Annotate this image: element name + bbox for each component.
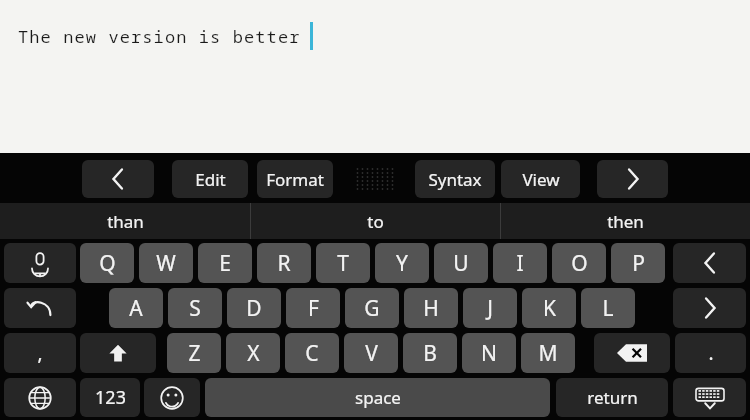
staticText: R xyxy=(277,249,291,278)
staticText: N xyxy=(481,339,497,368)
button[interactable]: Backspace xyxy=(594,333,670,373)
button[interactable]: S xyxy=(168,288,222,328)
button[interactable]: Hide keyboard xyxy=(673,378,746,417)
staticText: A xyxy=(129,294,143,323)
staticText: H xyxy=(423,294,439,323)
staticText: K xyxy=(543,294,556,323)
staticText: to xyxy=(367,210,384,233)
button[interactable]: Z xyxy=(167,333,221,373)
button[interactable]: . xyxy=(675,333,746,373)
staticText: T xyxy=(337,249,349,278)
button[interactable]: L xyxy=(581,288,635,328)
button[interactable]: W xyxy=(139,243,193,283)
staticText: L xyxy=(602,294,614,323)
button[interactable]: Emoji xyxy=(144,378,200,417)
button[interactable]: X xyxy=(226,333,280,373)
button[interactable]: D xyxy=(227,288,281,328)
button[interactable]: P xyxy=(611,243,665,283)
button[interactable]: Move cursor left xyxy=(673,243,746,283)
staticText: P xyxy=(632,249,645,278)
staticText: Syntax xyxy=(428,168,482,191)
button[interactable]: Q xyxy=(80,243,134,283)
button[interactable]: Next xyxy=(597,160,668,198)
button[interactable]: M xyxy=(521,333,575,373)
button[interactable]: Edit xyxy=(172,160,248,198)
button[interactable]: return xyxy=(556,378,668,417)
staticText: Q xyxy=(99,249,116,278)
button[interactable]: C xyxy=(285,333,339,373)
button[interactable]: E xyxy=(198,243,252,283)
staticText: S xyxy=(189,294,201,323)
staticText: than xyxy=(107,210,144,233)
button[interactable]: K xyxy=(522,288,576,328)
button[interactable]: then xyxy=(501,203,750,239)
staticText: E xyxy=(219,249,231,278)
button[interactable]: Syntax xyxy=(415,160,495,198)
button[interactable]: Undo xyxy=(4,288,76,328)
staticText: J xyxy=(487,294,493,323)
button[interactable]: than xyxy=(0,203,250,239)
staticText: Format xyxy=(266,168,324,191)
button[interactable]: J xyxy=(463,288,517,328)
staticText: , xyxy=(37,340,43,366)
button[interactable]: View xyxy=(501,160,580,198)
button[interactable]: Move cursor right xyxy=(673,288,746,328)
staticText: . xyxy=(708,340,714,366)
button[interactable]: R xyxy=(257,243,311,283)
staticText: return xyxy=(587,386,638,409)
staticText: U xyxy=(453,249,469,278)
button[interactable]: A xyxy=(109,288,163,328)
button[interactable]: space xyxy=(205,378,550,417)
button[interactable]: , xyxy=(4,333,76,373)
button[interactable]: V xyxy=(344,333,398,373)
staticText: The new version is better xyxy=(18,25,301,48)
staticText: Y xyxy=(396,249,408,278)
staticText: Edit xyxy=(195,168,226,191)
staticText: M xyxy=(538,339,558,368)
staticText: F xyxy=(308,294,319,323)
button[interactable]: U xyxy=(434,243,488,283)
button[interactable]: Y xyxy=(375,243,429,283)
button[interactable]: to xyxy=(251,203,500,239)
staticText: I xyxy=(516,249,524,278)
staticText: B xyxy=(423,339,437,368)
staticText: then xyxy=(607,210,644,233)
staticText: O xyxy=(571,249,588,278)
button[interactable]: I xyxy=(493,243,547,283)
staticText: D xyxy=(246,294,262,323)
button[interactable]: N xyxy=(462,333,516,373)
staticText: C xyxy=(305,339,319,368)
button[interactable]: Previous xyxy=(82,160,154,198)
staticText: V xyxy=(365,339,378,368)
staticText: space xyxy=(355,386,401,409)
staticText: G xyxy=(364,294,380,323)
button[interactable]: H xyxy=(404,288,458,328)
staticText: 123 xyxy=(95,385,126,410)
button[interactable]: Shift xyxy=(80,333,156,373)
button[interactable]: T xyxy=(316,243,370,283)
button[interactable]: 123 xyxy=(80,378,140,417)
button[interactable]: O xyxy=(552,243,606,283)
button[interactable]: Dictate xyxy=(4,243,76,283)
staticText: X xyxy=(247,339,260,368)
button[interactable]: G xyxy=(345,288,399,328)
staticText: W xyxy=(156,249,176,278)
button[interactable]: Format xyxy=(257,160,333,198)
staticText: View xyxy=(522,168,560,191)
button[interactable]: F xyxy=(286,288,340,328)
staticText: Z xyxy=(188,339,201,368)
button[interactable]: Change language xyxy=(4,378,76,417)
button[interactable]: B xyxy=(403,333,457,373)
